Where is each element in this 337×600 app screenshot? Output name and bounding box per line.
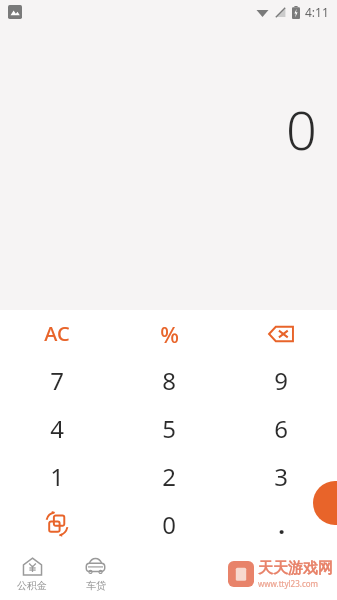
staticText: 3 <box>274 460 288 493</box>
button[interactable]: 0 <box>113 500 225 548</box>
staticText: www.ttyl23.com <box>258 578 319 589</box>
staticText: 4 <box>50 412 64 445</box>
staticText: 公积金 <box>17 579 47 592</box>
staticText: 0 <box>162 508 176 541</box>
button[interactable]: 5 <box>113 404 225 452</box>
button[interactable]: 车贷 <box>64 548 127 600</box>
button[interactable]: 6 <box>225 404 337 452</box>
staticText: 4:11 <box>305 4 329 20</box>
staticText: 8 <box>162 364 176 397</box>
button[interactable]: Convert <box>0 500 113 548</box>
button[interactable]: Equals <box>313 481 337 525</box>
staticText: AC <box>44 320 70 347</box>
staticText: 6 <box>274 412 288 445</box>
staticText: 1 <box>50 460 64 493</box>
staticText: 7 <box>50 364 64 397</box>
button[interactable]: . <box>225 500 337 548</box>
staticText: 2 <box>162 460 176 493</box>
button[interactable]: AC <box>0 310 113 357</box>
staticText: . <box>278 508 285 541</box>
button[interactable]: 4 <box>0 404 113 452</box>
staticText: 9 <box>274 364 288 397</box>
staticText: % <box>160 319 179 349</box>
staticText: 0 <box>286 92 317 166</box>
button[interactable]: 3 <box>225 452 337 500</box>
button[interactable]: 7 <box>0 357 113 404</box>
button[interactable]: 公积金 <box>0 548 64 600</box>
staticText: 车贷 <box>86 579 106 592</box>
button[interactable]: Backspace <box>225 310 337 357</box>
button[interactable]: 2 <box>113 452 225 500</box>
button[interactable]: % <box>113 310 225 357</box>
button[interactable]: 1 <box>0 452 113 500</box>
staticText: 天天游戏网 <box>258 559 333 578</box>
staticText: 5 <box>162 412 176 445</box>
button[interactable]: 8 <box>113 357 225 404</box>
button[interactable]: 9 <box>225 357 337 404</box>
